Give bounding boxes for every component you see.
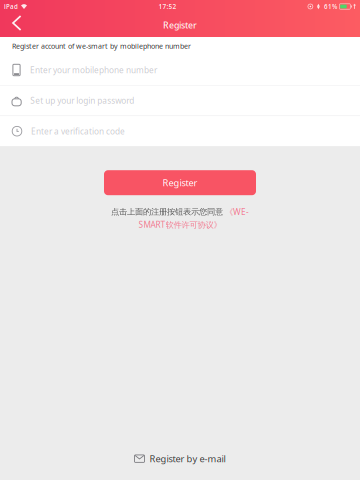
- staticText: Register account of we-smart by mobileph…: [12, 41, 191, 51]
- staticText: Set up your login password: [30, 95, 134, 106]
- staticText: 点击上面的注册按钮表示您同意: [111, 207, 223, 217]
- staticText: 17:52: [158, 2, 176, 11]
- staticText: 《WE-: [223, 206, 249, 217]
- button[interactable]: Back: [0, 14, 39, 36]
- staticText: Register by e-mail: [149, 452, 225, 465]
- button[interactable]: Enter a verification code: [0, 116, 360, 146]
- staticText: iPad: [4, 2, 18, 11]
- staticText: 61%: [324, 2, 337, 11]
- staticText: SMART软件许可协议》: [138, 219, 221, 230]
- button[interactable]: Register: [104, 170, 256, 195]
- staticText: Register: [163, 19, 197, 31]
- staticText: Register: [162, 176, 197, 189]
- button[interactable]: Register by e-mail: [124, 447, 235, 470]
- staticText: Enter a verification code: [31, 126, 125, 137]
- staticText: Enter your mobilephone number: [30, 64, 157, 76]
- button[interactable]: Set up your login password: [0, 86, 360, 116]
- button[interactable]: Enter your mobilephone number: [0, 55, 360, 85]
